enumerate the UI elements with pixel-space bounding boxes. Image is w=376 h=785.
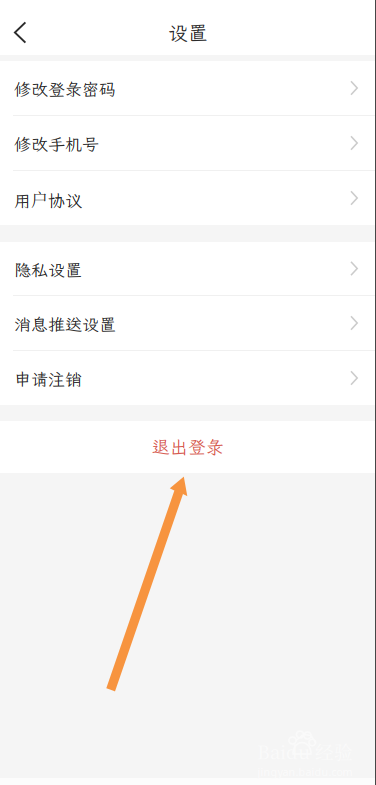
button[interactable]: 修改手机号 (0, 116, 376, 171)
button[interactable]: 申请注销 (0, 351, 376, 405)
staticText: 用户协议 (14, 187, 82, 212)
staticText: 修改登录密码 (14, 78, 116, 100)
button[interactable]: 消息推送设置 (0, 296, 376, 351)
button[interactable]: 退出登录 (0, 421, 376, 473)
staticText: 消息推送设置 (14, 313, 116, 335)
button[interactable]: 修改登录密码 (0, 61, 376, 116)
staticText: 设置 (168, 19, 208, 46)
staticText: 申请注销 (14, 368, 82, 390)
button[interactable]: 用户协议 (0, 171, 376, 225)
button[interactable]: Back (0, 10, 38, 55)
staticText: 隐私设置 (14, 259, 82, 281)
staticText: 退出登录 (152, 435, 224, 459)
button[interactable]: 隐私设置 (0, 242, 376, 296)
staticText: 修改手机号 (14, 133, 99, 155)
